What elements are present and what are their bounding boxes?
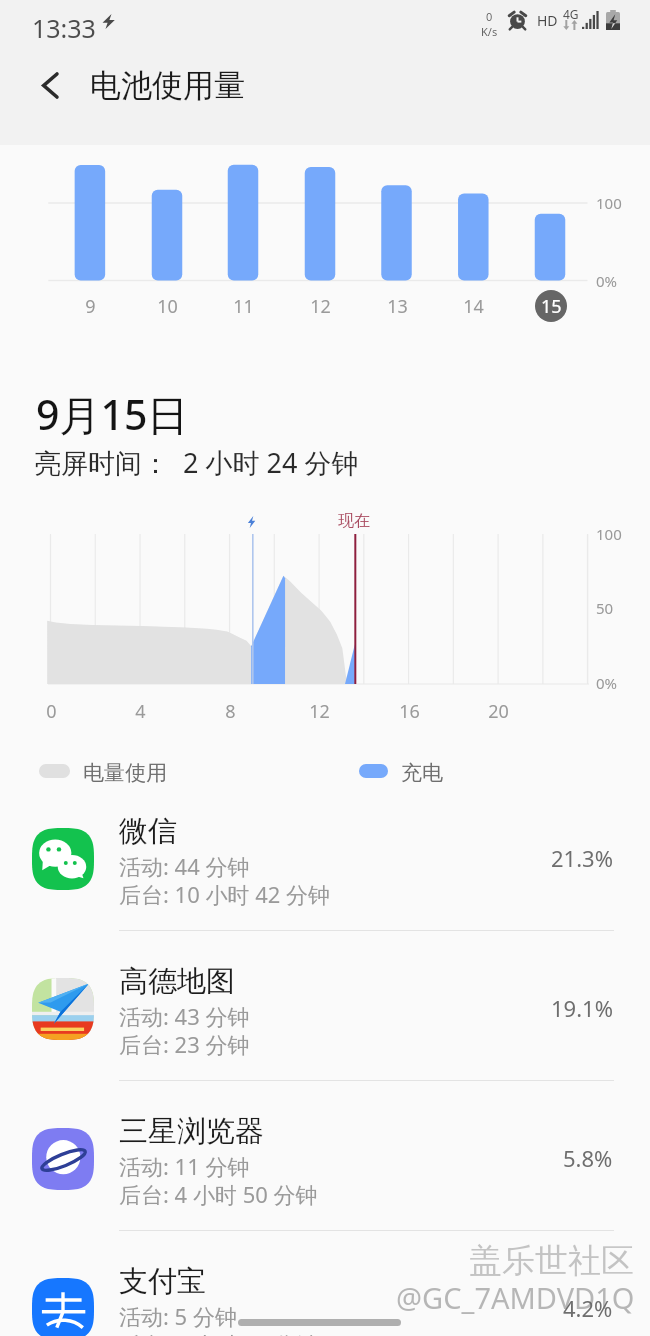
- staticText: 活动: 44 分钟: [119, 851, 250, 881]
- staticText: 16: [399, 699, 420, 724]
- staticText: 8: [225, 699, 236, 724]
- staticText: 15: [541, 294, 562, 319]
- button[interactable]: 微信: [0, 800, 650, 950]
- staticText: 4G: [563, 6, 579, 22]
- staticText: 0: [486, 9, 493, 24]
- staticText: 活动: 43 分钟: [119, 1001, 250, 1031]
- button[interactable]: 100: [0, 0, 650, 340]
- staticText: 盖乐世社区: [469, 1240, 634, 1282]
- button[interactable]: 支付宝: [0, 1250, 650, 1336]
- staticText: @GC_7AMDVD1Q: [396, 1278, 635, 1317]
- staticText: 9: [85, 294, 96, 319]
- staticText: 14: [463, 294, 484, 319]
- staticText: 100: [596, 193, 622, 213]
- staticText: 0: [46, 699, 57, 724]
- staticText: 12: [309, 699, 330, 724]
- staticText: 后台: 23 分钟: [119, 1029, 250, 1059]
- staticText: 19.1%: [551, 993, 613, 1023]
- staticText: 亮屏时间： 2 小时 24 分钟: [34, 444, 359, 481]
- staticText: 高德地图: [119, 963, 235, 1000]
- staticText: 充电: [401, 760, 443, 786]
- staticText: 后台: 4 小时 50 分钟: [119, 1179, 318, 1209]
- staticText: 11: [233, 294, 254, 319]
- staticText: 21.3%: [551, 843, 613, 873]
- staticText: 10: [157, 294, 178, 319]
- button[interactable]: 现在: [0, 0, 650, 1336]
- staticText: 活动: 5 分钟: [119, 1301, 237, 1331]
- staticText: 4: [135, 699, 146, 724]
- staticText: 电池使用量: [90, 66, 245, 105]
- staticText: K/s: [481, 24, 498, 39]
- staticText: 0%: [596, 271, 618, 291]
- staticText: 4.2%: [563, 1293, 613, 1323]
- staticText: 现在: [338, 511, 370, 531]
- staticText: 电量使用: [83, 760, 167, 786]
- staticText: 5.8%: [563, 1143, 613, 1173]
- staticText: 50: [596, 598, 614, 618]
- staticText: 100: [596, 524, 622, 544]
- button[interactable]: 高德地图: [0, 950, 650, 1100]
- staticText: 9月15日: [36, 386, 189, 442]
- button[interactable]: Back: [24, 59, 76, 111]
- button[interactable]: 三星浏览器: [0, 1100, 650, 1250]
- staticText: 微信: [119, 813, 177, 850]
- staticText: 20: [488, 699, 509, 724]
- staticText: 三星浏览器: [119, 1113, 264, 1150]
- staticText: 后台: 1 小时 12 分钟: [119, 1329, 318, 1336]
- staticText: 13: [387, 294, 408, 319]
- staticText: 活动: 11 分钟: [119, 1151, 250, 1181]
- staticText: 后台: 10 小时 42 分钟: [119, 879, 331, 909]
- staticText: 12: [310, 294, 331, 319]
- staticText: HD: [537, 11, 558, 30]
- staticText: 13:33: [32, 11, 96, 45]
- staticText: 0%: [596, 673, 618, 693]
- staticText: 支付宝: [119, 1263, 206, 1300]
